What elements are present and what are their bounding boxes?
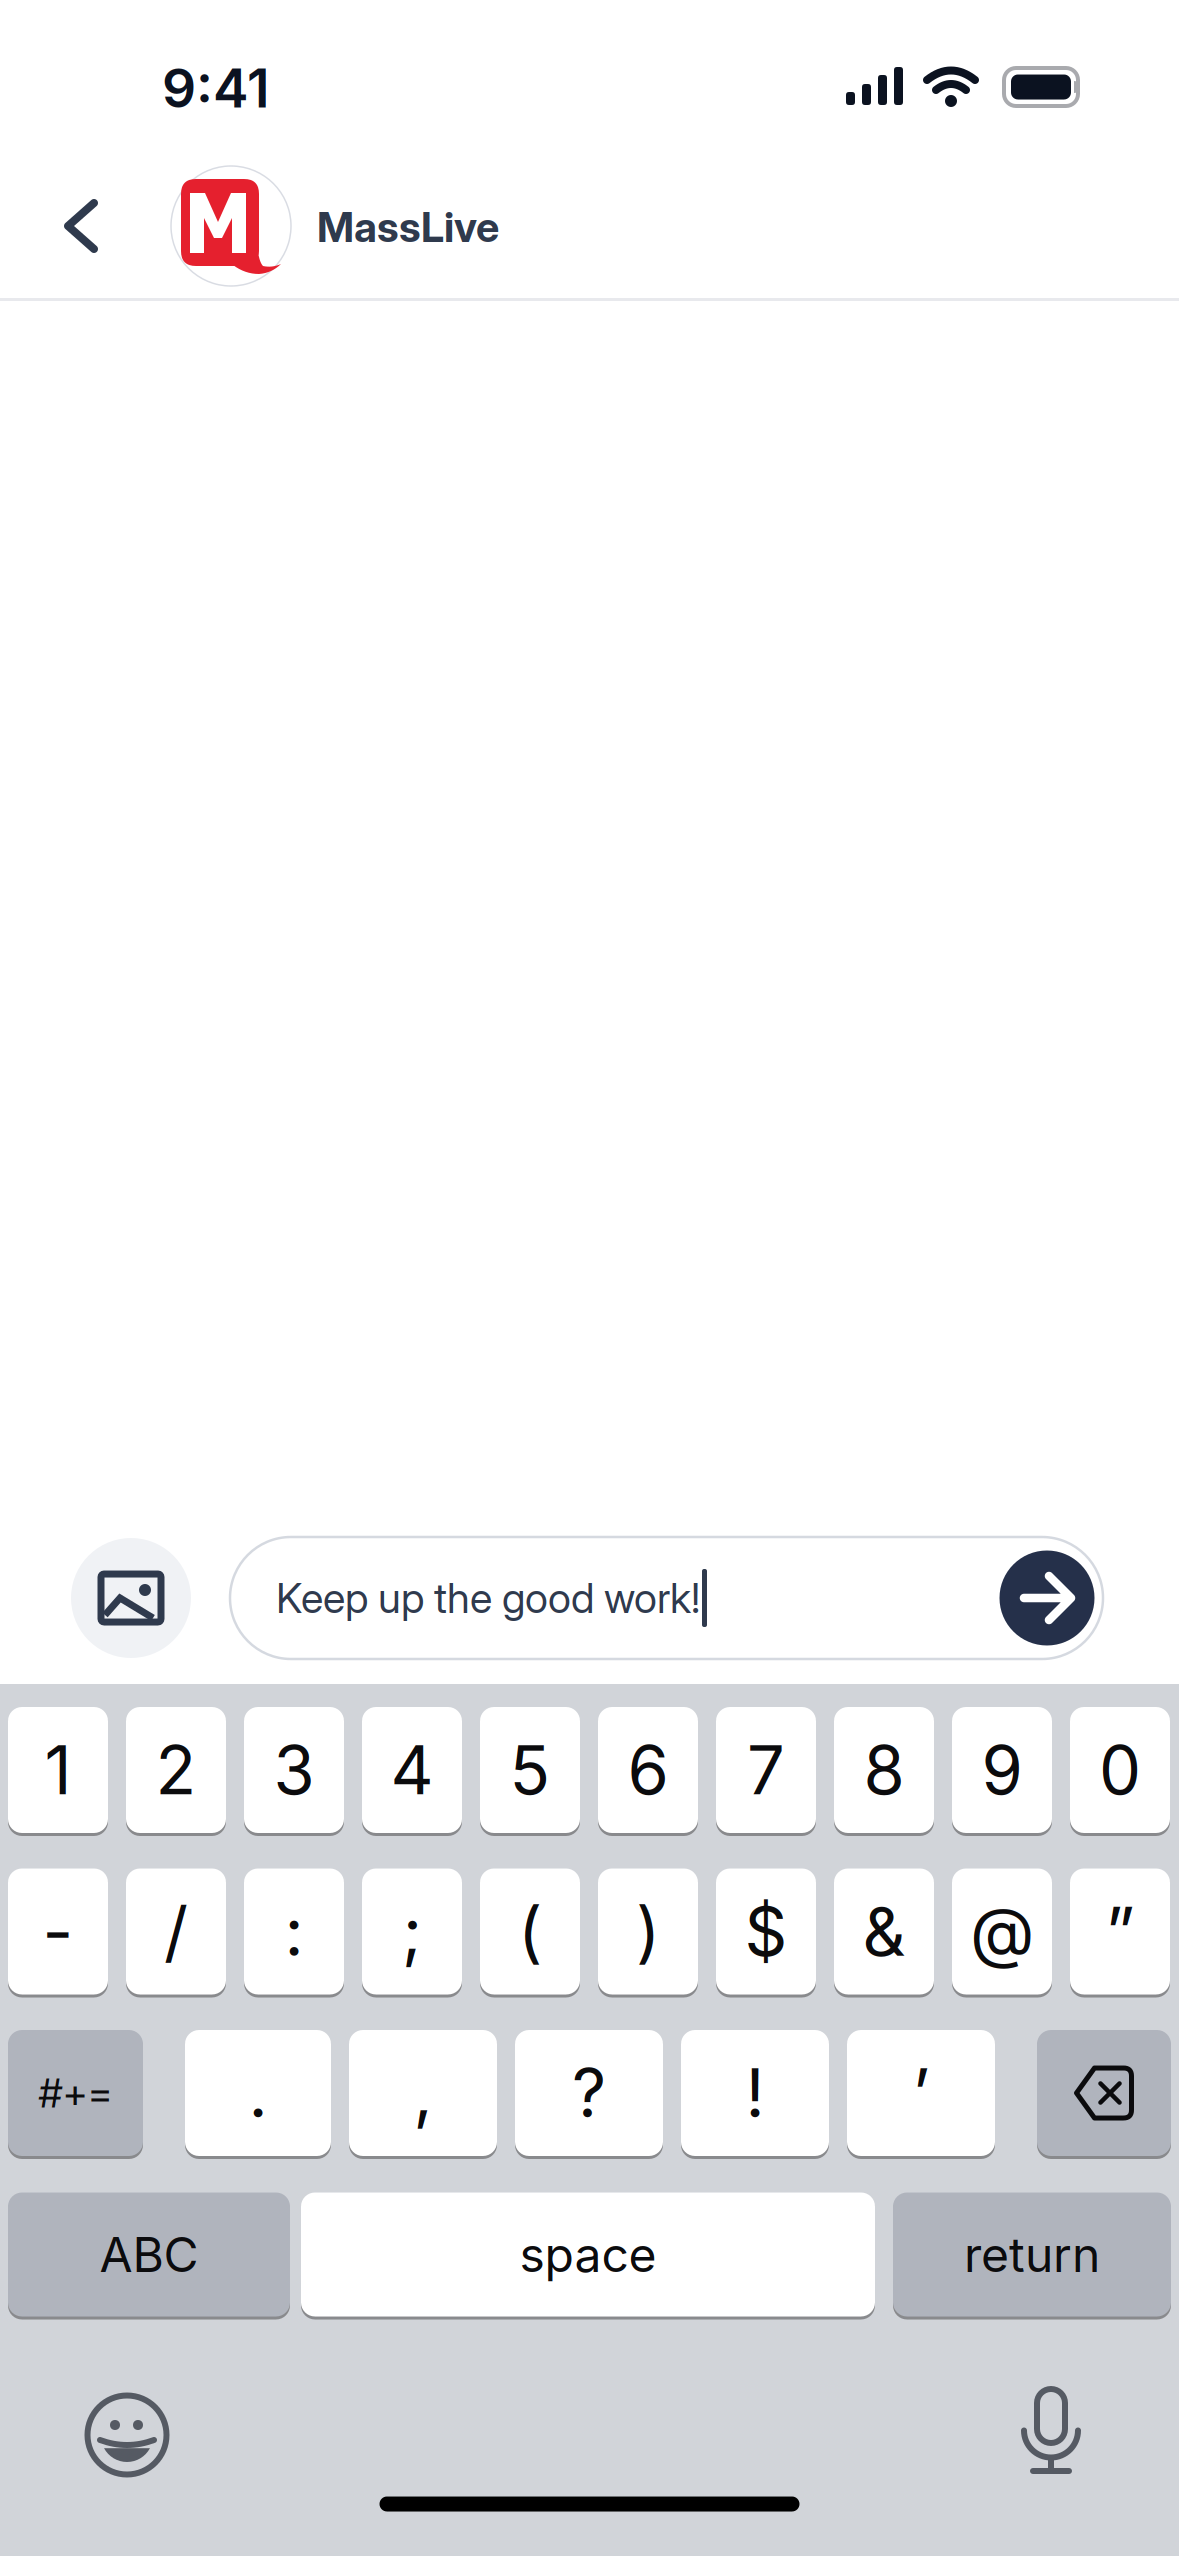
button[interactable]: Emoji xyxy=(71,2379,183,2491)
button[interactable]: & xyxy=(834,1866,934,1996)
button[interactable]: Message xyxy=(230,1537,1103,1659)
staticText: 6 xyxy=(627,1731,668,1809)
button[interactable]: ; xyxy=(362,1866,462,1996)
button[interactable]: : xyxy=(244,1866,344,1996)
button[interactable]: 6 xyxy=(598,1705,698,1835)
button[interactable]: ABC xyxy=(8,2190,290,2318)
staticText: space xyxy=(519,2226,656,2283)
staticText: : xyxy=(284,1892,303,1971)
button[interactable]: Attach photo xyxy=(71,1538,191,1658)
button[interactable]: - xyxy=(8,1866,108,1996)
button[interactable]: Send xyxy=(999,1550,1094,1645)
button[interactable]: 0 xyxy=(1070,1705,1170,1835)
staticText: MassLive xyxy=(317,203,499,251)
button[interactable]: Back xyxy=(48,183,114,269)
button[interactable]: #+= xyxy=(8,2028,143,2158)
button[interactable]: Dictate xyxy=(1005,2369,1097,2493)
staticText: , xyxy=(413,2054,432,2132)
button[interactable]: ( xyxy=(480,1866,580,1996)
button[interactable]: 8 xyxy=(834,1705,934,1835)
button[interactable]: space xyxy=(301,2190,875,2318)
button[interactable]: 7 xyxy=(716,1705,816,1835)
staticText: 3 xyxy=(273,1731,314,1809)
button[interactable]: Delete xyxy=(1037,2028,1171,2158)
button[interactable]: 5 xyxy=(480,1705,580,1835)
staticText: - xyxy=(42,1892,73,1971)
staticText: 4 xyxy=(390,1731,433,1809)
button[interactable]: ? xyxy=(515,2028,663,2158)
staticText: 0 xyxy=(1099,1731,1141,1809)
staticText: 5 xyxy=(509,1731,550,1809)
button[interactable]: 4 xyxy=(362,1705,462,1835)
staticText: ! xyxy=(745,2054,764,2132)
button[interactable]: ) xyxy=(598,1866,698,1996)
staticText: $ xyxy=(744,1892,787,1971)
staticText: ” xyxy=(1105,1892,1134,1971)
button[interactable]: ’ xyxy=(847,2028,995,2158)
staticText: ; xyxy=(402,1892,422,1971)
button[interactable]: ” xyxy=(1070,1866,1170,1996)
staticText: 9:41 xyxy=(162,56,270,119)
button[interactable]: 3 xyxy=(244,1705,344,1835)
staticText: ABC xyxy=(99,2226,198,2283)
staticText: ’ xyxy=(912,2054,929,2132)
button[interactable]: return xyxy=(893,2190,1171,2318)
button[interactable]: ! xyxy=(681,2028,829,2158)
staticText: 7 xyxy=(747,1731,785,1809)
staticText: Keep up the good work! xyxy=(276,1574,700,1622)
staticText: / xyxy=(164,1892,188,1971)
button[interactable]: MassLive xyxy=(171,166,291,286)
button[interactable]: $ xyxy=(716,1866,816,1996)
button[interactable]: 2 xyxy=(126,1705,226,1835)
button[interactable]: 9 xyxy=(952,1705,1052,1835)
staticText: 9 xyxy=(981,1731,1022,1809)
button[interactable]: 1 xyxy=(8,1705,108,1835)
button[interactable]: / xyxy=(126,1866,226,1996)
staticText: @ xyxy=(970,1892,1034,1971)
staticText: & xyxy=(862,1892,905,1971)
staticText: 2 xyxy=(155,1731,196,1809)
button[interactable]: , xyxy=(349,2028,497,2158)
staticText: ( xyxy=(518,1892,542,1971)
button[interactable]: . xyxy=(185,2028,331,2158)
staticText: 1 xyxy=(44,1731,71,1809)
staticText: return xyxy=(964,2226,1100,2283)
staticText: . xyxy=(248,2054,267,2132)
staticText: ) xyxy=(636,1892,660,1971)
button[interactable]: @ xyxy=(952,1866,1052,1996)
staticText: ? xyxy=(572,2054,606,2132)
staticText: #+= xyxy=(38,2069,112,2117)
staticText: 8 xyxy=(863,1731,904,1809)
